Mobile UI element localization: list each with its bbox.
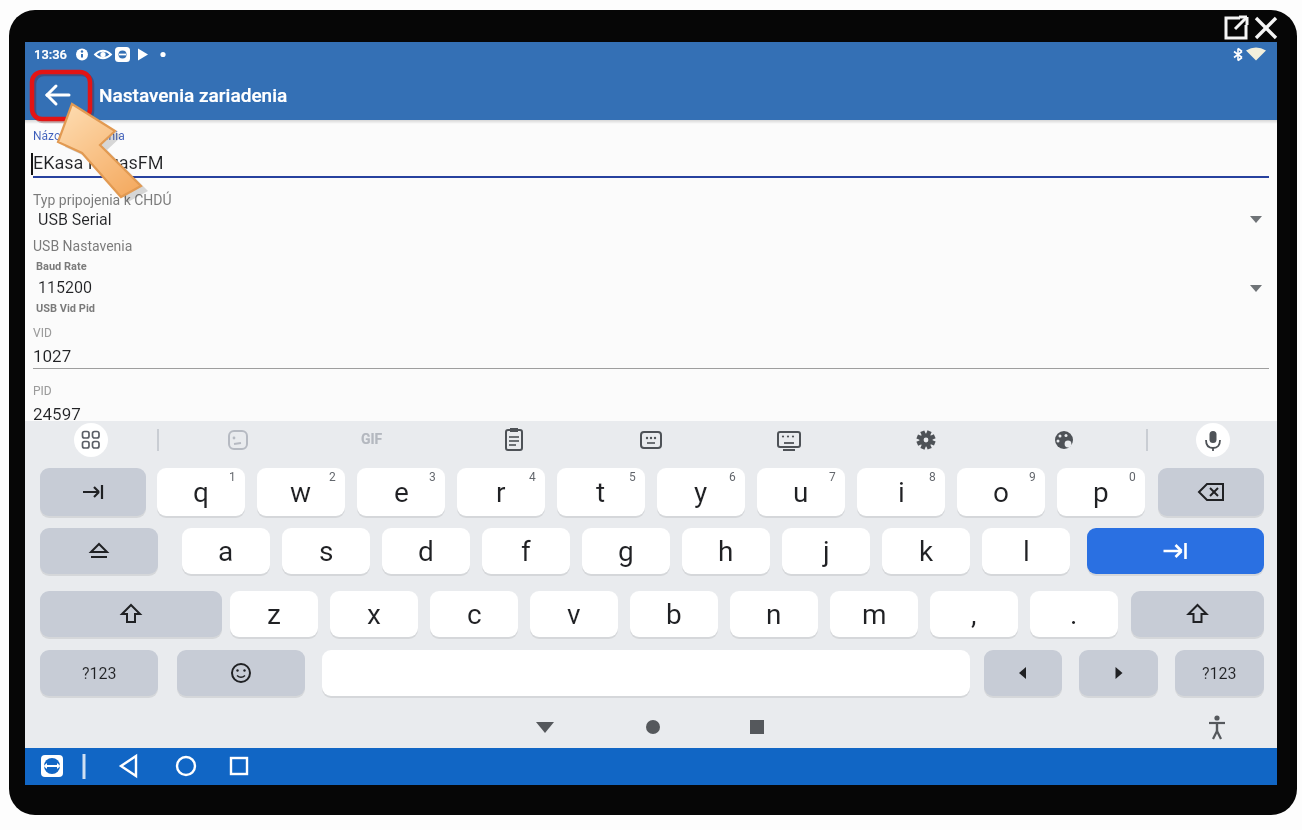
staticText: 5 xyxy=(629,470,636,484)
staticText: w xyxy=(290,476,312,509)
staticText: l xyxy=(1023,535,1030,568)
button[interactable] xyxy=(1193,706,1241,748)
staticText: USB Nastavenia xyxy=(33,238,133,254)
staticText: 8 xyxy=(929,470,936,484)
button[interactable] xyxy=(33,192,1269,236)
button[interactable]: h xyxy=(682,528,770,574)
button[interactable] xyxy=(71,421,111,459)
button[interactable]: f xyxy=(482,528,570,574)
button[interactable]: ?123 xyxy=(1175,650,1264,696)
button[interactable]: n xyxy=(730,591,818,637)
staticText: 0 xyxy=(1129,470,1136,484)
button[interactable]: r xyxy=(457,468,545,516)
button[interactable] xyxy=(733,706,781,748)
button[interactable] xyxy=(629,706,677,748)
staticText: . xyxy=(1070,598,1078,631)
staticText: k xyxy=(919,535,934,568)
button[interactable] xyxy=(494,421,534,459)
button[interactable]: . xyxy=(1030,591,1118,637)
button[interactable] xyxy=(1158,468,1264,516)
button[interactable] xyxy=(1044,421,1084,459)
button[interactable]: t xyxy=(557,468,645,516)
button[interactable] xyxy=(170,754,202,780)
button[interactable] xyxy=(177,650,305,696)
button[interactable]: l xyxy=(982,528,1070,574)
staticText: Nastavenia zariadenia xyxy=(99,84,288,106)
button[interactable]: a xyxy=(182,528,270,574)
staticText: p xyxy=(1093,476,1109,509)
button[interactable] xyxy=(1193,421,1233,459)
staticText: d xyxy=(418,535,434,568)
button[interactable]: q xyxy=(157,468,245,516)
button[interactable]: e xyxy=(357,468,445,516)
staticText: 1027 xyxy=(33,346,72,366)
button[interactable] xyxy=(906,421,946,459)
staticText: b xyxy=(666,598,682,631)
button[interactable] xyxy=(33,272,1269,306)
staticText: VID xyxy=(33,326,52,340)
staticText: ?123 xyxy=(82,664,117,683)
button[interactable]: w xyxy=(257,468,345,516)
staticText: 6 xyxy=(729,470,736,484)
button[interactable] xyxy=(1079,650,1158,696)
staticText: h xyxy=(718,535,734,568)
button[interactable]: s xyxy=(282,528,370,574)
staticText: y xyxy=(694,476,708,509)
button[interactable]: ?123 xyxy=(40,650,158,696)
staticText: f xyxy=(521,535,531,568)
button[interactable] xyxy=(1131,591,1264,637)
staticText: USB Serial xyxy=(38,210,112,229)
staticText: Názov zariadenia xyxy=(33,129,125,143)
staticText: 9 xyxy=(1029,470,1036,484)
staticText: n xyxy=(766,598,782,631)
button[interactable] xyxy=(40,528,158,574)
button[interactable]: y xyxy=(657,468,745,516)
button[interactable] xyxy=(223,754,255,780)
button[interactable] xyxy=(34,73,82,117)
button[interactable]: p xyxy=(1057,468,1145,516)
staticText: GIF xyxy=(361,431,383,447)
button[interactable] xyxy=(40,468,146,516)
button[interactable]: k xyxy=(882,528,970,574)
button[interactable]: z xyxy=(230,591,318,637)
staticText: c xyxy=(467,598,482,631)
button[interactable]: v xyxy=(530,591,618,637)
button[interactable] xyxy=(218,421,258,459)
button[interactable] xyxy=(984,650,1062,696)
button[interactable]: m xyxy=(830,591,918,637)
staticText: m xyxy=(862,598,887,631)
staticText: e xyxy=(394,476,409,509)
staticText: o xyxy=(993,476,1009,509)
button[interactable] xyxy=(115,754,147,780)
staticText: 13:36 xyxy=(34,47,68,62)
button[interactable] xyxy=(356,421,396,459)
button[interactable]: b xyxy=(630,591,718,637)
button[interactable]: u xyxy=(757,468,845,516)
button[interactable] xyxy=(521,706,569,748)
button[interactable]: d xyxy=(382,528,470,574)
staticText: PID xyxy=(33,384,52,398)
button[interactable]: x xyxy=(330,591,418,637)
button[interactable] xyxy=(1087,528,1264,574)
button[interactable]: i xyxy=(857,468,945,516)
staticText: r xyxy=(496,476,506,509)
button[interactable] xyxy=(631,421,671,459)
button[interactable] xyxy=(39,755,65,779)
staticText: EKasa PegasFM xyxy=(33,152,164,173)
button[interactable] xyxy=(769,421,809,459)
button[interactable] xyxy=(33,338,1269,370)
button[interactable]: c xyxy=(430,591,518,637)
staticText: 24597 xyxy=(33,404,81,424)
staticText: s xyxy=(319,535,334,568)
button[interactable] xyxy=(40,591,222,637)
button[interactable]: o xyxy=(957,468,1045,516)
staticText: , xyxy=(971,598,977,631)
staticText: j xyxy=(823,535,830,568)
button[interactable]: , xyxy=(930,591,1018,637)
button[interactable]: g xyxy=(582,528,670,574)
button[interactable]: j xyxy=(782,528,870,574)
staticText: 3 xyxy=(429,470,436,484)
staticText: i xyxy=(898,476,905,509)
staticText: v xyxy=(567,598,581,631)
